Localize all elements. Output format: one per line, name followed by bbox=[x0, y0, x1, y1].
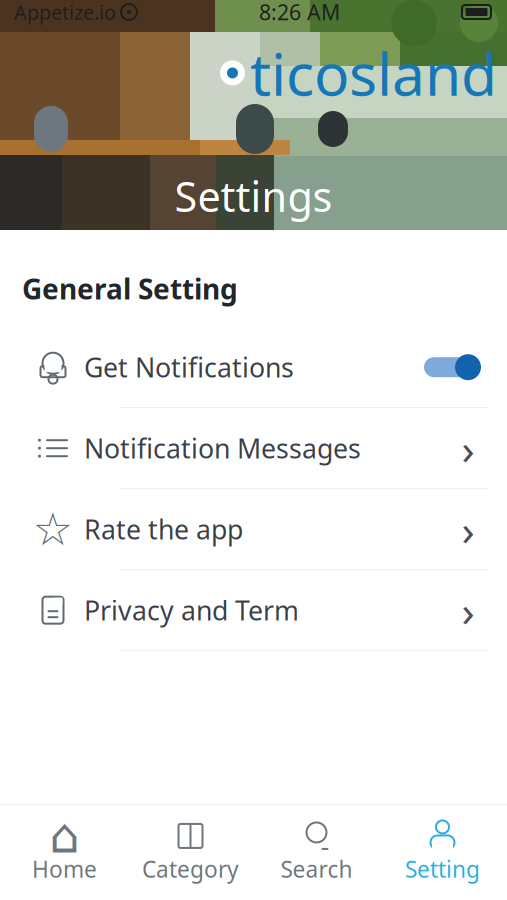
staticText: Settings bbox=[174, 169, 332, 223]
staticText: › bbox=[461, 420, 474, 477]
staticText: Appetize.io bbox=[14, 0, 116, 25]
staticText: Notification Messages bbox=[84, 430, 361, 466]
button[interactable]: Privacy and Term bbox=[0, 570, 507, 650]
button[interactable]: Category bbox=[127, 805, 253, 899]
staticText: ☆ bbox=[32, 503, 73, 555]
staticText: Home bbox=[32, 854, 97, 884]
staticText: General Setting bbox=[22, 270, 238, 307]
staticText: Search bbox=[280, 854, 352, 884]
staticText: 8:26 AM bbox=[259, 0, 340, 26]
button[interactable]: Search bbox=[253, 805, 379, 899]
button[interactable]: ☆ bbox=[0, 489, 507, 569]
staticText: › bbox=[461, 501, 474, 558]
staticText: ticosland bbox=[250, 34, 497, 112]
staticText: Privacy and Term bbox=[84, 592, 299, 628]
staticText: › bbox=[461, 582, 474, 639]
button[interactable]: ⌂ bbox=[1, 805, 127, 899]
staticText: Setting bbox=[405, 854, 480, 884]
staticText: Category bbox=[142, 854, 239, 884]
button[interactable]: Notification Messages bbox=[0, 408, 507, 488]
button[interactable]: Setting bbox=[379, 805, 505, 899]
staticText: Get Notifications bbox=[84, 349, 294, 385]
staticText: ⌂ bbox=[49, 809, 79, 863]
staticText: Rate the app bbox=[84, 511, 243, 547]
button[interactable]: Get Notifications bbox=[0, 327, 507, 407]
